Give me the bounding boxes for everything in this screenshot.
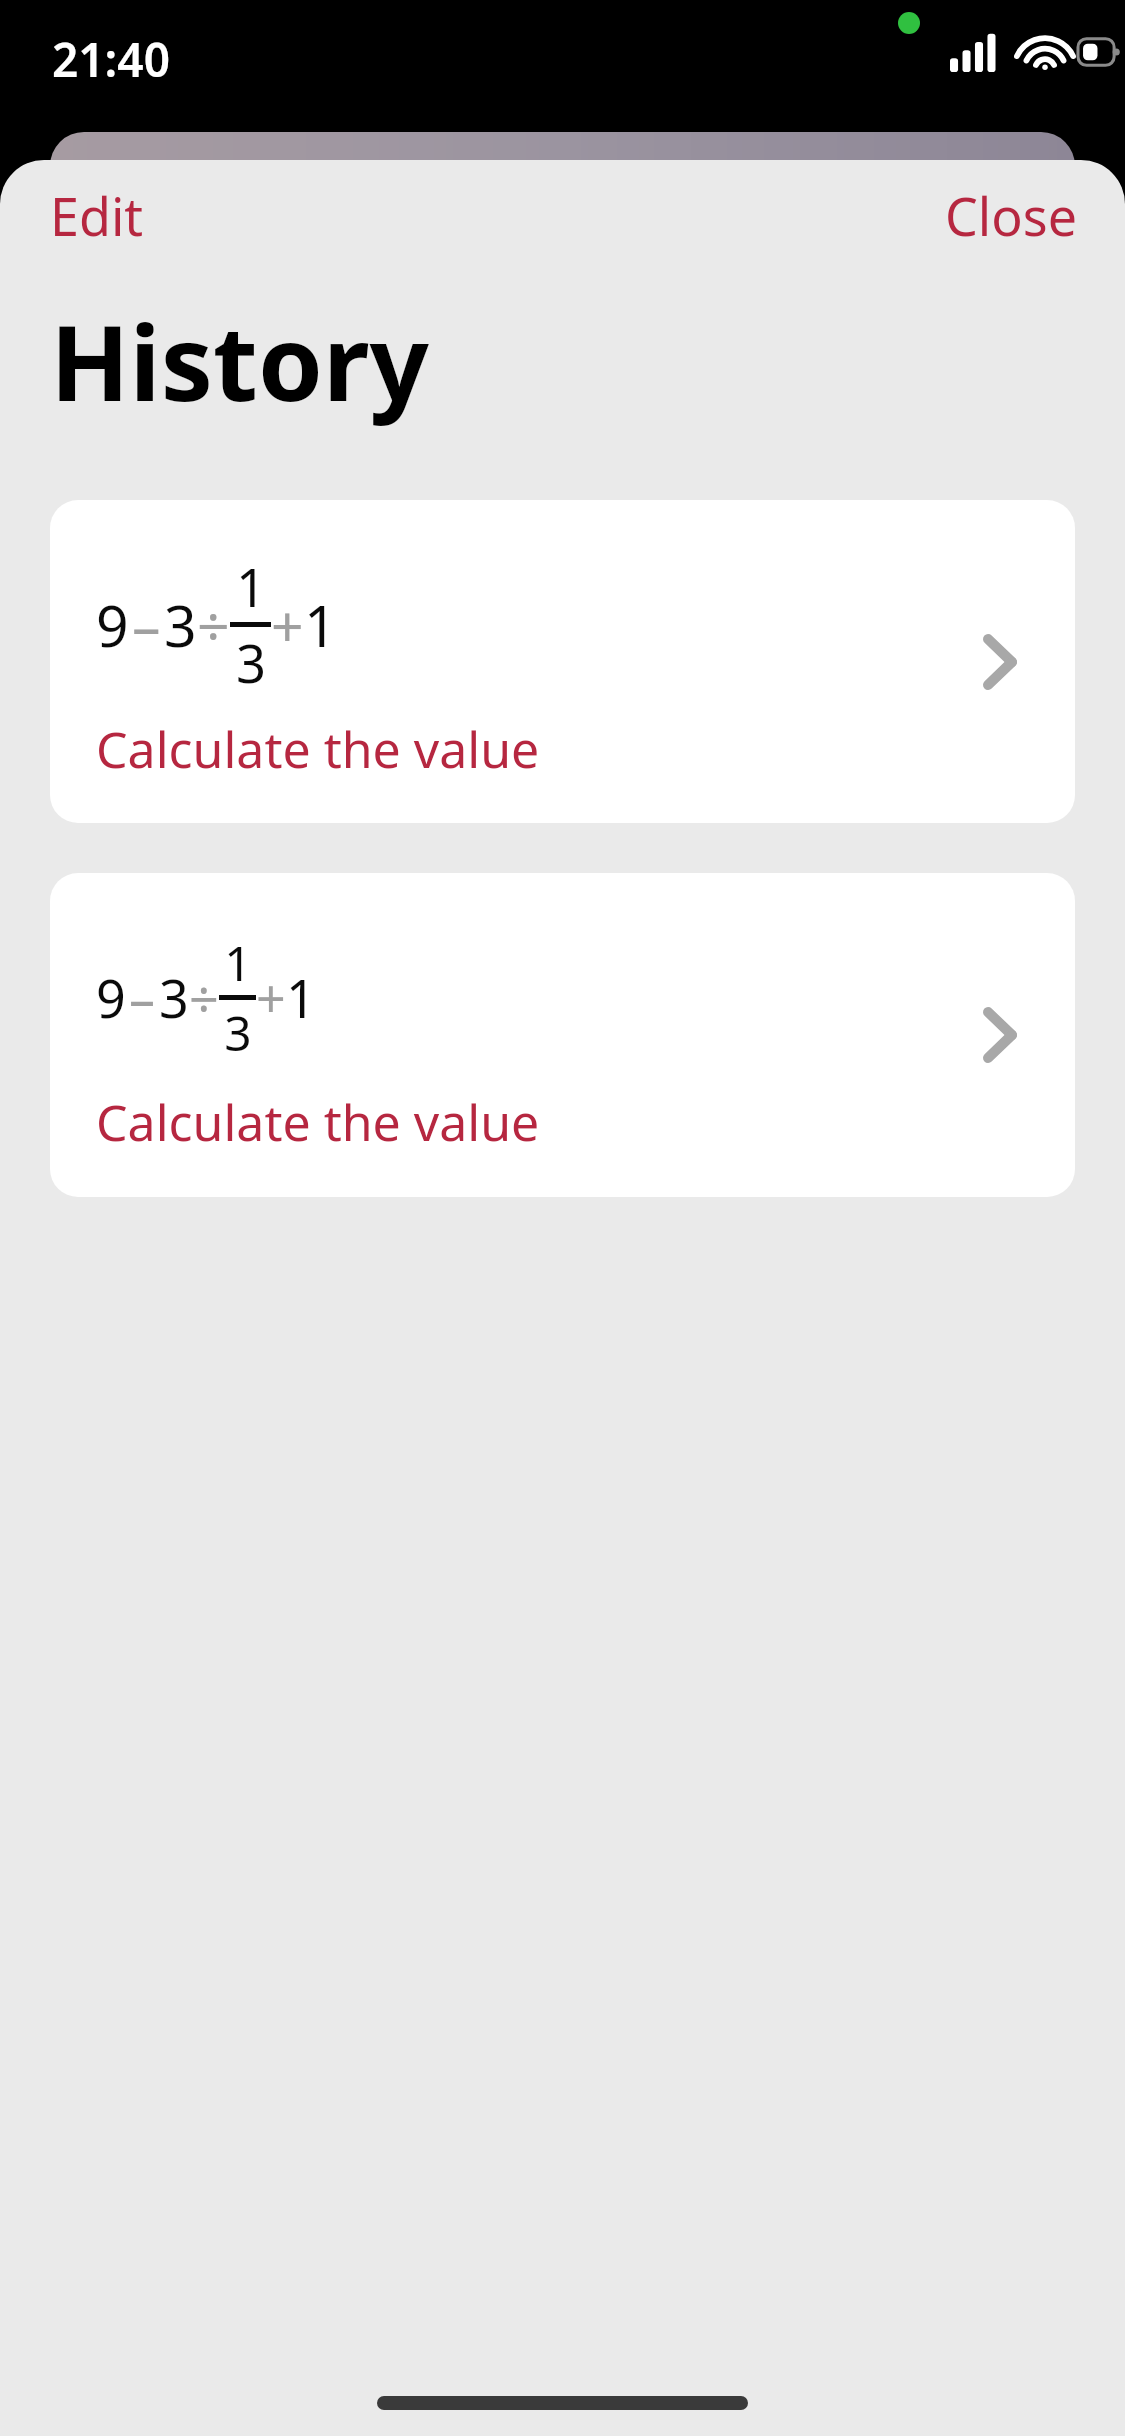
staticText: 1: [236, 551, 266, 622]
staticText: Calculate the value: [96, 1088, 540, 1156]
staticText: –: [129, 962, 156, 1033]
staticText: 21:40: [52, 28, 170, 91]
staticText: ÷: [197, 586, 230, 664]
button[interactable]: Edit: [30, 170, 164, 261]
button[interactable]: 9: [50, 500, 1075, 823]
staticText: 1: [224, 930, 252, 995]
staticText: Edit: [50, 180, 144, 251]
staticText: 3: [164, 586, 197, 664]
staticText: 3: [159, 962, 189, 1033]
staticText: 3: [224, 1000, 252, 1065]
button[interactable]: 9: [50, 873, 1075, 1197]
staticText: 9: [96, 586, 129, 664]
staticText: History: [50, 290, 429, 432]
staticText: +: [271, 586, 304, 664]
staticText: –: [132, 586, 161, 664]
staticText: 1: [286, 962, 316, 1033]
button[interactable]: Close: [925, 170, 1097, 261]
staticText: 3: [236, 627, 266, 698]
staticText: Calculate the value: [96, 715, 540, 783]
staticText: 9: [96, 962, 126, 1033]
staticText: ÷: [189, 962, 219, 1033]
staticText: +: [256, 962, 286, 1033]
staticText: 1: [304, 586, 337, 664]
staticText: Close: [945, 180, 1077, 251]
